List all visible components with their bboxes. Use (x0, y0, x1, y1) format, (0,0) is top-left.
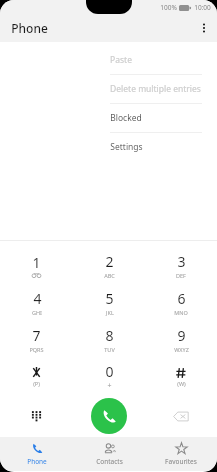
staticText: 100% (160, 3, 177, 12)
staticText: Favourites (165, 457, 197, 466)
staticText: 5 (105, 289, 114, 308)
staticText: 8 (105, 326, 114, 345)
staticText: Phone (11, 20, 48, 36)
staticText: (P) (33, 380, 40, 387)
button[interactable]: 5 (73, 284, 145, 321)
button[interactable]: Paste (101, 46, 211, 74)
staticText: Phone (27, 457, 47, 466)
staticText: 6 (177, 289, 186, 308)
staticText: 4 (33, 289, 42, 308)
button[interactable]: (P) (0, 358, 73, 395)
staticText: + (107, 381, 112, 391)
button[interactable]: Contacts (73, 437, 145, 471)
button[interactable]: Backspace (145, 395, 217, 437)
button[interactable]: Blocked (101, 104, 211, 132)
staticText: Contacts (96, 457, 123, 466)
button[interactable]: Phone (0, 437, 73, 471)
staticText: Paste (110, 54, 132, 66)
staticText: 0 (105, 362, 114, 381)
button[interactable]: (W) (145, 358, 217, 395)
staticText: 2 (105, 252, 114, 271)
button[interactable]: 3 (145, 247, 217, 284)
button[interactable]: 1 (0, 247, 73, 284)
staticText: GHI (32, 309, 42, 316)
staticText: 9 (177, 326, 186, 345)
button[interactable]: 7 (0, 321, 73, 358)
button[interactable]: 8 (73, 321, 145, 358)
button[interactable]: 2 (73, 247, 145, 284)
staticText: PQRS (29, 346, 44, 353)
staticText: ABC (104, 272, 115, 279)
button[interactable]: 0 (73, 358, 145, 395)
staticText: 7 (32, 326, 41, 345)
staticText: MNO (174, 309, 188, 316)
button[interactable]: 4 (0, 284, 73, 321)
staticText: JKL (106, 309, 114, 316)
staticText: TUV (104, 346, 115, 353)
button[interactable]: Delete multiple entries (101, 75, 211, 103)
staticText: WXYZ (174, 346, 189, 353)
button[interactable]: 9 (145, 321, 217, 358)
button[interactable]: 6 (145, 284, 217, 321)
staticText: (W) (177, 380, 186, 387)
button[interactable]: Favourites (145, 437, 217, 471)
button[interactable]: Call (91, 398, 127, 434)
staticText: Blocked (110, 112, 142, 124)
staticText: 10:00 (194, 3, 211, 12)
button[interactable]: Settings (101, 133, 211, 161)
button[interactable]: Keypad (0, 395, 73, 437)
staticText: 1 (32, 253, 41, 272)
staticText: DEF (176, 272, 186, 279)
staticText: Settings (110, 141, 143, 153)
button[interactable]: More options (191, 15, 217, 41)
staticText: Delete multiple entries (110, 83, 201, 95)
staticText: 3 (177, 252, 186, 271)
